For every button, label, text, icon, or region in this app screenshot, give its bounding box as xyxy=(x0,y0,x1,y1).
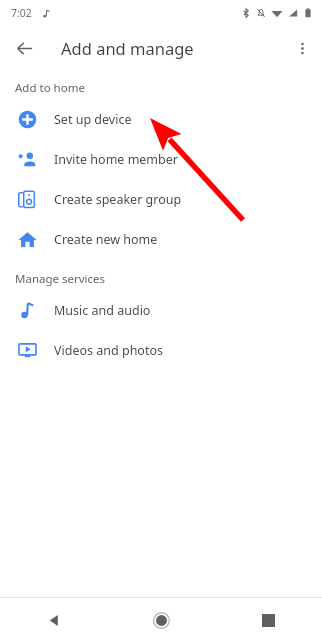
button[interactable]: Videos and photos xyxy=(0,330,322,370)
staticText: Create new home xyxy=(54,231,158,248)
button[interactable]: Back xyxy=(0,598,108,642)
button[interactable]: More options xyxy=(286,32,318,64)
staticText: Create speaker group xyxy=(54,191,182,208)
button[interactable]: Home xyxy=(108,598,215,642)
button[interactable]: Create new home xyxy=(0,219,322,259)
staticText: Add and manage xyxy=(61,37,194,59)
button[interactable]: Recent apps xyxy=(215,598,322,642)
button[interactable]: Navigate up xyxy=(9,33,39,63)
staticText: Add to home xyxy=(15,80,85,96)
button[interactable]: Music and audio xyxy=(0,290,322,330)
staticText: Music and audio xyxy=(54,302,151,319)
staticText: 7:02 xyxy=(11,6,32,20)
button[interactable]: Set up device xyxy=(0,99,322,139)
button[interactable]: Invite home member xyxy=(0,139,322,179)
staticText: Invite home member xyxy=(54,151,178,168)
staticText: Set up device xyxy=(54,111,132,128)
staticText: Videos and photos xyxy=(54,342,163,359)
staticText: Manage services xyxy=(15,271,106,287)
button[interactable]: Create speaker group xyxy=(0,179,322,219)
